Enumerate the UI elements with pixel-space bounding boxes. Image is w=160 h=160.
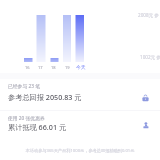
staticText: 18 — [51, 65, 56, 70]
staticText: 累计抵现 66.01 元 — [8, 122, 67, 132]
staticText: 已经参与 23 笔 — [8, 83, 40, 90]
staticText: 使用 20 张优惠券 — [8, 115, 45, 122]
staticText: 1002元 参 — [140, 54, 160, 60]
other: Total return details — [142, 95, 149, 102]
button[interactable]: 使用 20 张优惠券 — [0, 112, 160, 143]
staticText: 2008元 参 — [138, 12, 160, 18]
button[interactable]: 已经参与 23 笔 — [0, 80, 160, 111]
staticText: 今天 — [76, 64, 86, 70]
staticText: 本活动参与365天产品利1000元，参考总回报精确到0.01元 — [0, 148, 160, 154]
staticText: 16 — [25, 65, 30, 70]
staticText: 参考总回报 2050.83 元 — [8, 92, 82, 102]
staticText: 17 — [38, 65, 43, 70]
staticText: 19 — [65, 65, 70, 70]
other: Coupon details — [142, 122, 149, 129]
